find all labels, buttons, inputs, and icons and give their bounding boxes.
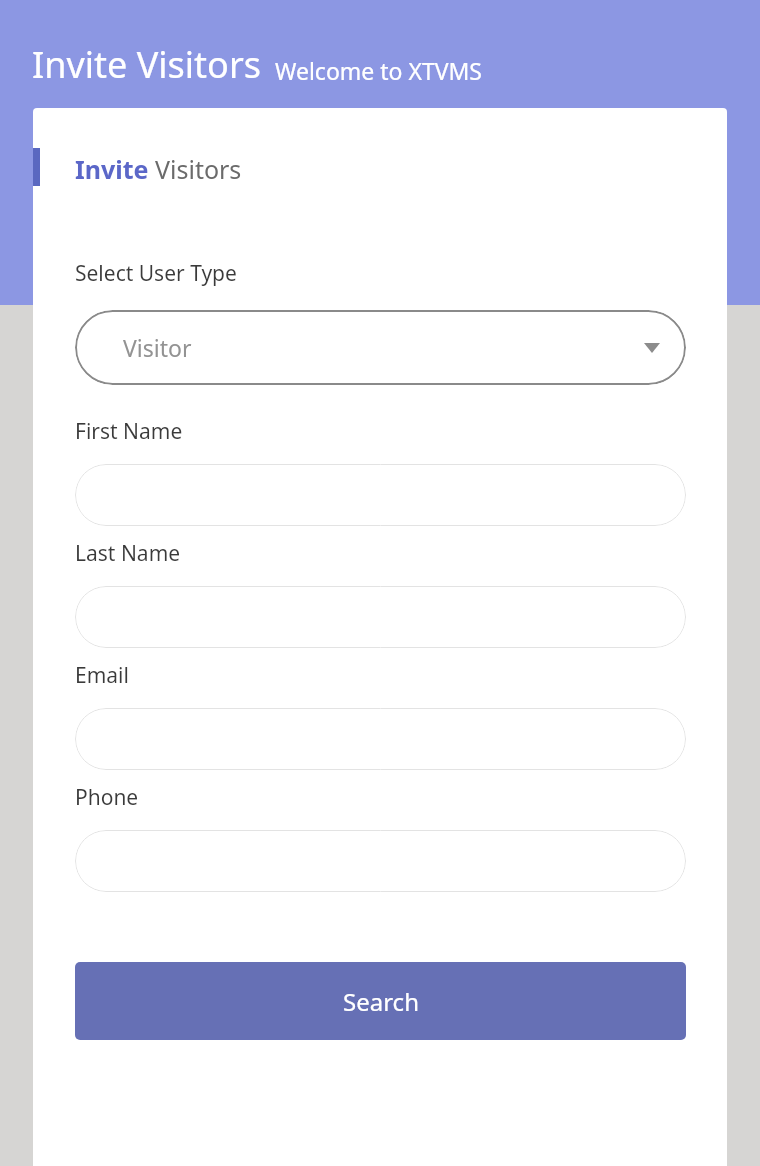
staticText: Phone [75, 783, 139, 812]
button[interactable] [75, 708, 686, 770]
staticText: First Name [75, 417, 183, 446]
staticText: Invite Visitors [75, 152, 242, 186]
staticText: Email [75, 661, 129, 690]
staticText: Invite Visitors [32, 40, 261, 89]
staticText: Select User Type [75, 259, 237, 288]
staticText: Welcome to XTVMS [275, 55, 483, 86]
button[interactable] [75, 830, 686, 892]
staticText: Last Name [75, 539, 181, 568]
button[interactable]: Visitor [75, 310, 686, 385]
staticText: Search [343, 985, 419, 1018]
button[interactable] [75, 586, 686, 648]
button[interactable] [75, 464, 686, 526]
staticText: Visitor [123, 332, 192, 363]
button[interactable]: Search [75, 962, 686, 1040]
